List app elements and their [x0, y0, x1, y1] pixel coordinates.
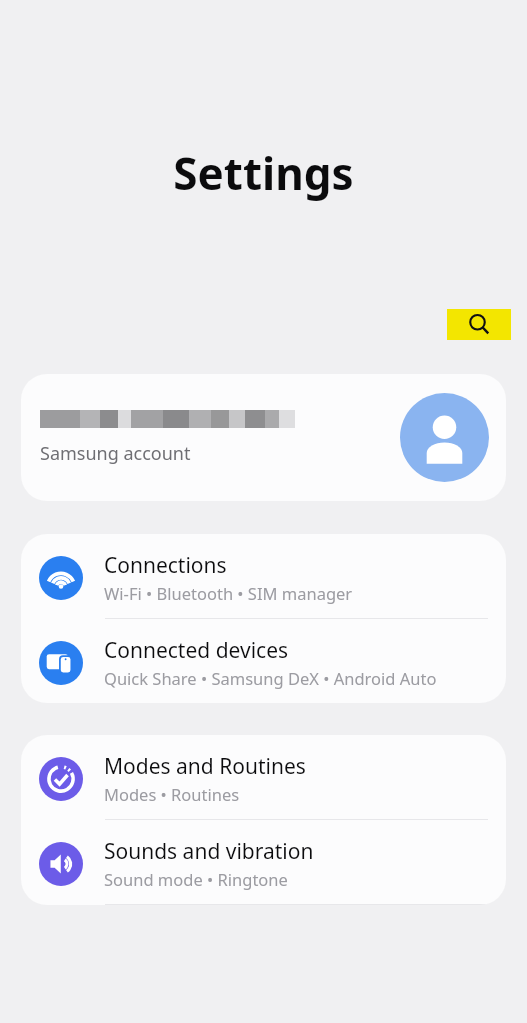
staticText: Connections — [104, 551, 227, 580]
staticText: Quick Share • Samsung DeX • Android Auto — [104, 667, 437, 689]
button[interactable]: Connections — [21, 534, 506, 619]
button[interactable]: Samsung account — [21, 374, 506, 501]
staticText: Sounds and vibration — [104, 837, 314, 866]
staticText: Modes and Routines — [104, 752, 306, 781]
staticText: Modes • Routines — [104, 783, 240, 805]
button[interactable]: Search — [447, 309, 511, 340]
staticText: Settings — [0, 143, 527, 203]
staticText: Connected devices — [104, 636, 289, 665]
staticText: Sound mode • Ringtone — [104, 868, 288, 890]
staticText: Samsung account — [40, 441, 191, 466]
button[interactable]: Connected devices — [21, 619, 506, 703]
button[interactable]: Sounds and vibration — [21, 820, 506, 905]
button[interactable]: Modes and Routines — [21, 735, 506, 820]
staticText: Wi-Fi • Bluetooth • SIM manager — [104, 582, 353, 604]
